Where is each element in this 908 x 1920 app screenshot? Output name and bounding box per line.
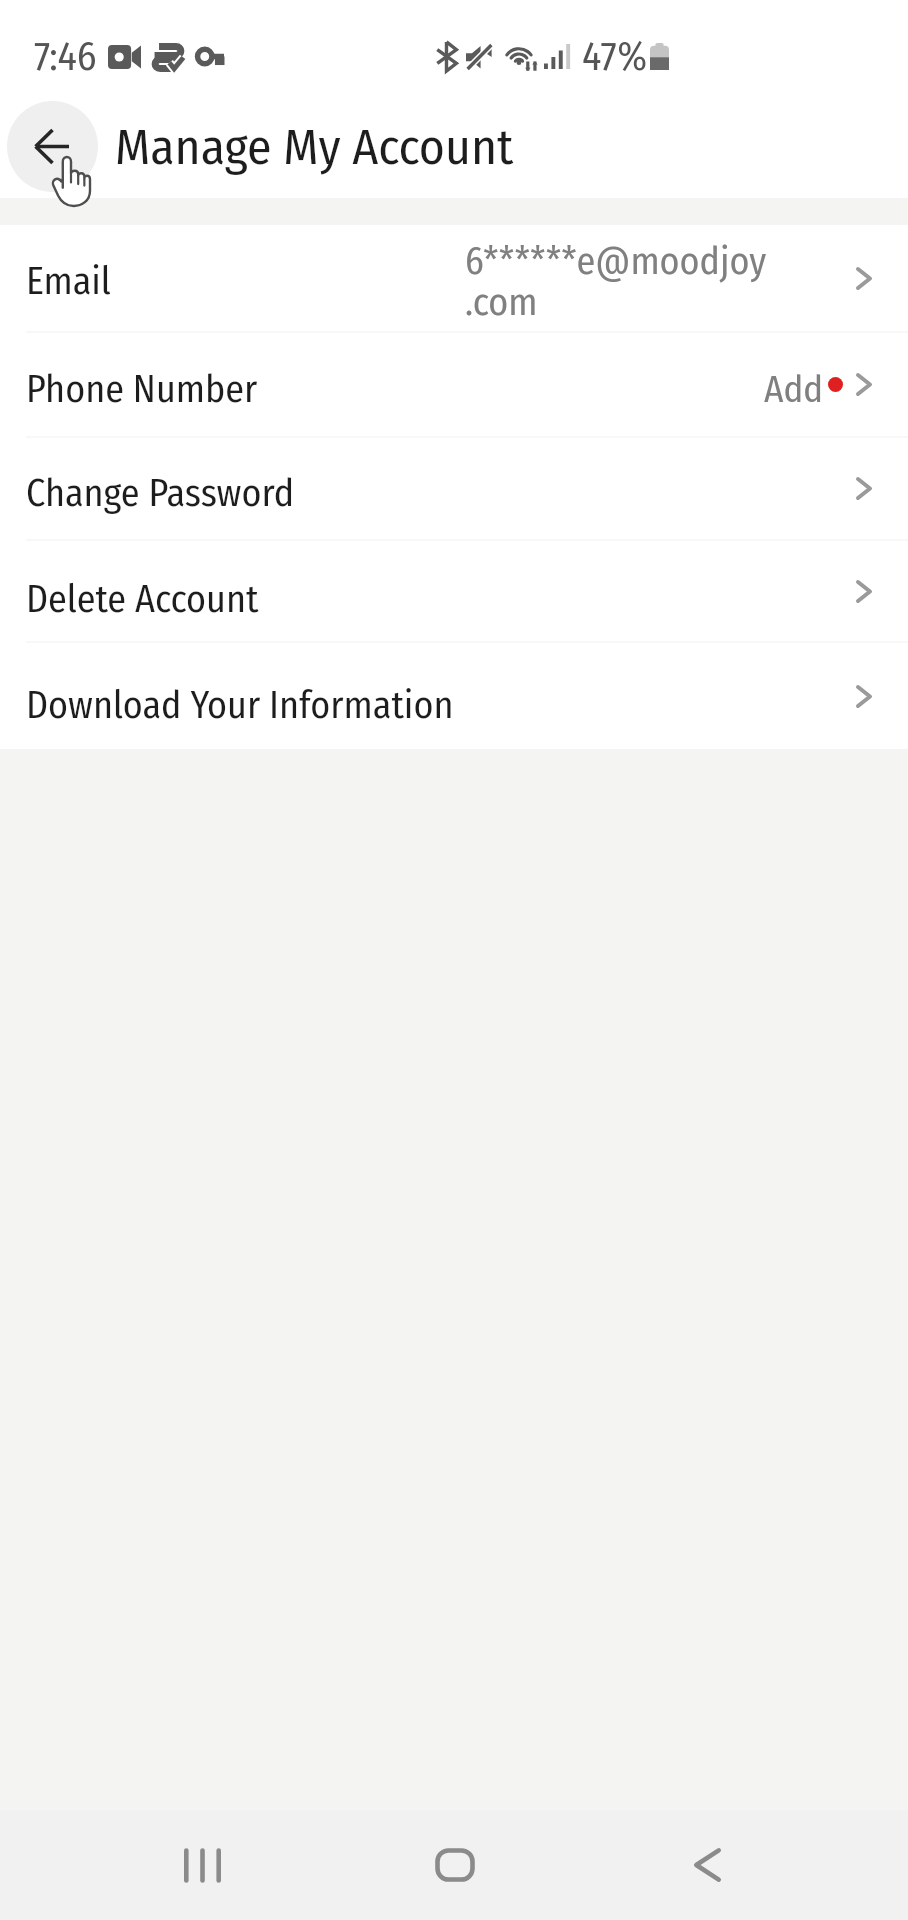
button[interactable]: Change Password <box>0 438 908 539</box>
button[interactable]: Email <box>0 225 908 331</box>
button[interactable]: Home <box>385 1810 525 1920</box>
staticText: 47% <box>582 33 648 81</box>
button[interactable]: Recent apps <box>132 1810 272 1920</box>
button[interactable]: Delete Account <box>0 541 908 641</box>
staticText: 6******e@moodjoy .com <box>465 238 815 325</box>
staticText: Delete Account <box>26 576 259 622</box>
staticText: Change Password <box>26 470 295 516</box>
staticText: Add <box>764 367 824 411</box>
button[interactable]: Download Your Information <box>0 643 908 749</box>
staticText: 7:46 <box>34 33 97 81</box>
staticText: Manage My Account <box>115 118 514 178</box>
button[interactable]: Phone Number <box>0 333 908 436</box>
button[interactable]: Back <box>7 101 98 192</box>
staticText: Phone Number <box>26 366 258 412</box>
staticText: Email <box>26 258 111 304</box>
staticText: Download Your Information <box>26 682 454 728</box>
button[interactable]: Back <box>637 1810 777 1920</box>
